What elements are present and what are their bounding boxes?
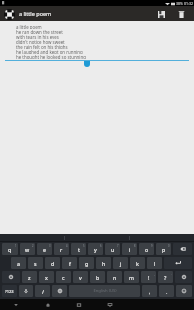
staticText: he laughed and kept on running	[16, 49, 83, 54]
staticText: b	[96, 274, 100, 281]
staticText: 5	[83, 244, 85, 248]
staticText: p	[162, 246, 166, 253]
button[interactable]: Home	[32, 299, 63, 310]
staticText: 8	[134, 244, 136, 248]
staticText: j	[120, 260, 122, 267]
button[interactable]: Voice input	[19, 285, 33, 297]
button[interactable]: z	[22, 271, 37, 283]
staticText: ,	[149, 288, 151, 295]
button[interactable]: !	[141, 271, 156, 283]
staticText: 7	[117, 244, 119, 248]
staticText: z	[28, 274, 31, 281]
button[interactable]: m	[124, 271, 139, 283]
button[interactable]: n	[107, 271, 122, 283]
button[interactable]: Cursor handle	[84, 61, 90, 67]
staticText: v	[79, 274, 82, 281]
button[interactable]: p	[156, 243, 171, 255]
staticText: a	[17, 260, 20, 267]
button[interactable]: l	[147, 257, 162, 269]
staticText: f	[69, 260, 71, 267]
button[interactable]: v	[73, 271, 88, 283]
button[interactable]: b	[90, 271, 105, 283]
staticText: g	[85, 260, 89, 267]
button[interactable]: Delete	[173, 243, 192, 255]
button[interactable]: ?	[158, 271, 173, 283]
button[interactable]: /	[35, 285, 50, 297]
staticText: 4	[66, 244, 68, 248]
staticText: 9	[151, 244, 153, 248]
staticText: the rain felt on his thighs	[16, 44, 68, 49]
button[interactable]: q	[2, 243, 18, 255]
button[interactable]: Back	[0, 299, 32, 310]
staticText: .	[166, 288, 168, 295]
button[interactable]: ,	[142, 285, 157, 297]
staticText: q	[8, 246, 12, 253]
staticText: t	[78, 246, 80, 253]
staticText: with tears in his eyes	[16, 34, 59, 39]
button[interactable]: Delete	[174, 7, 188, 21]
button[interactable]: u	[105, 243, 120, 255]
button[interactable]: Shift	[175, 271, 192, 283]
button[interactable]: .	[159, 285, 174, 297]
staticText: c	[62, 274, 65, 281]
staticText: s	[34, 260, 37, 267]
staticText: didn't notice how sweet	[16, 39, 65, 44]
button[interactable]: English (US)	[69, 285, 140, 297]
staticText: l	[154, 260, 156, 267]
staticText: 2	[32, 244, 34, 248]
staticText: 3	[49, 244, 51, 248]
button[interactable]: Change language	[52, 285, 67, 297]
button[interactable]: k	[130, 257, 145, 269]
button[interactable]: Recent apps	[63, 299, 94, 310]
staticText: y	[94, 246, 97, 253]
staticText: ,	[154, 272, 155, 276]
button[interactable]: Save	[154, 7, 168, 21]
button[interactable]: Hide keyboard	[94, 299, 125, 310]
button[interactable]: Enter	[164, 257, 192, 269]
staticText: k	[136, 260, 139, 267]
button[interactable]: w	[20, 243, 35, 255]
button[interactable]: App icon, navigate up	[3, 8, 15, 20]
button[interactable]: h	[96, 257, 111, 269]
staticText: a little poem	[19, 10, 52, 17]
button[interactable]: i	[122, 243, 137, 255]
staticText: .	[171, 272, 172, 276]
staticText: ?123	[5, 289, 14, 294]
button[interactable]: ?123	[2, 285, 17, 297]
button[interactable]: Shift	[2, 271, 20, 283]
button[interactable]: g	[79, 257, 94, 269]
staticText: e	[43, 246, 46, 253]
staticText: w	[25, 246, 30, 253]
button[interactable]: o	[139, 243, 154, 255]
staticText: 01:32	[184, 1, 193, 6]
button[interactable]: x	[39, 271, 54, 283]
button[interactable]: e	[37, 243, 52, 255]
staticText: a little poem	[16, 24, 42, 29]
button[interactable]: Emoji	[176, 285, 192, 297]
staticText: 0	[168, 244, 170, 248]
staticText: English (US)	[93, 288, 117, 294]
button[interactable]: y	[88, 243, 103, 255]
button[interactable]: a	[11, 257, 26, 269]
staticText: d	[51, 260, 55, 267]
staticText: x	[45, 274, 48, 281]
staticText: he ran down the street	[16, 29, 63, 34]
staticText: /	[42, 288, 44, 295]
staticText: 1	[15, 244, 17, 248]
button[interactable]: j	[113, 257, 128, 269]
staticText: h	[102, 260, 106, 267]
staticText: ?	[164, 274, 167, 281]
button[interactable]: d	[45, 257, 60, 269]
staticText: u	[111, 246, 115, 253]
staticText: 6	[100, 244, 102, 248]
staticText: o	[145, 246, 149, 253]
button[interactable]: c	[56, 271, 71, 283]
button[interactable]: r	[54, 243, 69, 255]
button[interactable]: s	[28, 257, 43, 269]
button[interactable]: f	[62, 257, 77, 269]
button[interactable]: t	[71, 243, 86, 255]
staticText: r	[60, 246, 63, 253]
